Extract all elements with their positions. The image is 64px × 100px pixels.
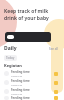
button[interactable]: Feeding time <box>4 78 58 87</box>
button[interactable] <box>5 32 51 42</box>
button[interactable]: Feeding time <box>4 87 58 96</box>
button[interactable]: See all <box>49 47 59 51</box>
staticText: Feeding time <box>11 79 30 83</box>
staticText: Kegiatan <box>4 63 22 68</box>
button[interactable]: Today <box>4 55 17 61</box>
staticText: 10:00 AM <box>11 92 22 95</box>
staticText: Feeding time <box>11 70 30 74</box>
button[interactable]: Feeding time <box>4 69 58 78</box>
staticText: See all <box>49 47 59 51</box>
staticText: Daily <box>4 45 17 52</box>
staticText: Keep track of milk drink of your baby <box>4 8 49 21</box>
staticText: Feeding time <box>11 88 30 92</box>
staticText: Feeding time <box>11 96 30 100</box>
staticText: 10:00 AM <box>11 74 22 77</box>
staticText: 10:00 AM <box>11 83 22 86</box>
button[interactable]: Feeding time <box>4 96 58 100</box>
